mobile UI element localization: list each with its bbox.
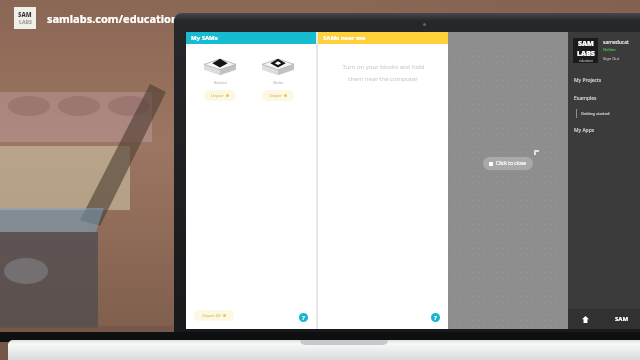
staticText: ? <box>302 314 305 322</box>
staticText: samlabs.com/education <box>47 11 179 26</box>
button[interactable]: My Apps <box>574 126 640 135</box>
staticText: My Apps <box>574 127 595 134</box>
staticText: Sign Out <box>603 56 620 61</box>
staticText: SAM <box>18 11 32 19</box>
button[interactable]: Click to close <box>483 157 533 170</box>
staticText: Getting started <box>581 111 610 116</box>
button[interactable]: Slider <box>252 53 304 101</box>
button[interactable]: Getting started <box>576 109 640 118</box>
staticText: them near the computer <box>348 75 418 83</box>
button[interactable]: Help <box>299 313 308 322</box>
staticText: Unpair <box>211 93 224 98</box>
staticText: Online <box>603 47 616 52</box>
button[interactable]: Help <box>431 313 440 322</box>
staticText: Unpair All <box>202 313 221 318</box>
staticText: SAM <box>578 39 594 49</box>
staticText: Click to close <box>496 160 527 167</box>
staticText: Unpair <box>269 93 282 98</box>
button[interactable]: Home <box>579 313 591 325</box>
button[interactable]: Button <box>194 53 246 101</box>
staticText: My Projects <box>574 77 602 84</box>
staticText: Examples <box>574 95 597 102</box>
button[interactable]: Unpair <box>262 90 294 101</box>
staticText: My SAMs <box>191 34 218 42</box>
button[interactable]: Examples <box>574 94 640 103</box>
staticText: Turn on your blocks and hold <box>342 63 425 71</box>
staticText: LABS <box>19 19 32 26</box>
staticText: LABS <box>577 49 595 59</box>
staticText: education <box>579 59 594 63</box>
staticText: Button <box>214 80 227 85</box>
staticText: Slider <box>273 80 284 85</box>
staticText: sameducat <box>603 39 629 46</box>
button[interactable]: My Projects <box>574 76 640 85</box>
button[interactable]: Unpair <box>204 90 236 101</box>
staticText: SAM <box>615 315 629 323</box>
staticText: ? <box>434 314 437 322</box>
staticText: SAMs near me <box>323 34 366 42</box>
button[interactable]: Sign Out <box>603 56 620 61</box>
button[interactable]: Unpair All <box>194 310 234 321</box>
button[interactable]: SAM <box>615 315 629 323</box>
